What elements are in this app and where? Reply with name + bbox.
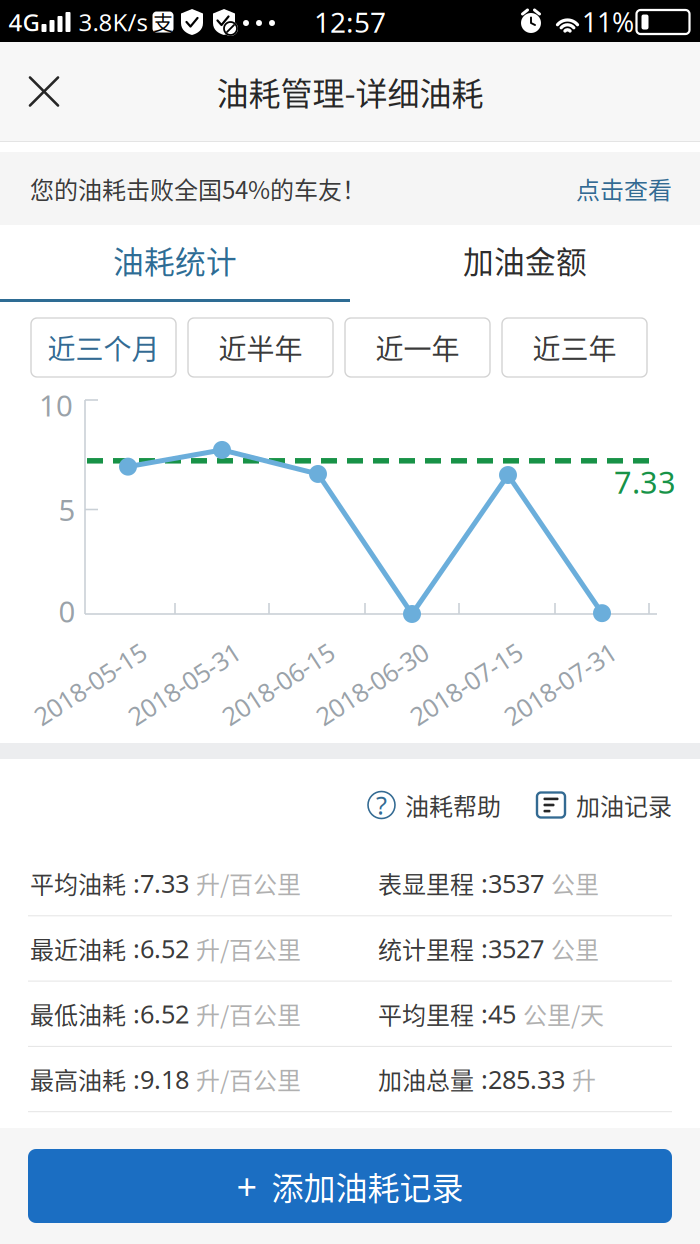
staticText: 10 [39, 385, 73, 424]
staticText: ? [376, 788, 387, 822]
staticText: 公里/天 [523, 996, 604, 1031]
staticText: 7.33 [614, 461, 676, 502]
staticText: 添加油耗记录 [271, 1163, 463, 1209]
staticText: 您的油耗击败全国54%的车友！ [30, 171, 366, 206]
staticText: 近半年 [218, 327, 302, 368]
staticText: 2018-06-15 [214, 667, 342, 701]
staticText: :6.52 [126, 932, 196, 965]
staticText: 升/百公里 [196, 866, 301, 901]
staticText: 公里 [551, 866, 599, 901]
staticText: 平均里程 [378, 996, 474, 1031]
staticText: 升/百公里 [196, 1062, 301, 1096]
staticText: 最近油耗 [30, 931, 126, 966]
staticText: :3527 [474, 932, 551, 965]
staticText: 平均油耗 [30, 866, 126, 901]
staticText: 最低油耗 [30, 996, 126, 1031]
staticText: :9.18 [126, 1062, 196, 1096]
staticText: 统计里程 [378, 931, 474, 966]
button[interactable]: 近三个月 [31, 318, 176, 377]
staticText: 12:57 [314, 3, 386, 41]
staticText: 升/百公里 [196, 996, 301, 1031]
staticText: 2018-05-31 [120, 667, 248, 701]
staticText: 升 [572, 1062, 596, 1096]
staticText: 支 [153, 7, 173, 36]
button[interactable]: 油耗统计 [0, 225, 350, 302]
staticText: 近三个月 [47, 327, 159, 368]
staticText: 4G [8, 6, 39, 38]
staticText: 最高油耗 [30, 1062, 126, 1096]
staticText: 点击查看 [576, 171, 672, 206]
button[interactable]: Close [0, 52, 75, 130]
button[interactable]: ? [368, 788, 501, 822]
button[interactable]: 近半年 [188, 318, 333, 377]
button[interactable]: 点击查看 [576, 171, 672, 206]
staticText: 表显里程 [378, 866, 474, 901]
staticText: 加油记录 [576, 788, 672, 822]
staticText: 2018-05-15 [26, 667, 154, 701]
button[interactable]: 加油金额 [350, 225, 700, 302]
staticText: :7.33 [126, 866, 196, 900]
staticText: :6.52 [126, 997, 196, 1030]
staticText: :3537 [474, 866, 551, 900]
staticText: 加油总量 [378, 1062, 474, 1096]
staticText: :285.33 [474, 1062, 572, 1096]
staticText: 2018-07-15 [402, 667, 530, 701]
staticText: 2018-07-31 [496, 667, 624, 701]
staticText: 近三年 [532, 327, 616, 368]
button[interactable]: 近一年 [345, 318, 490, 377]
staticText: 5 [58, 490, 75, 529]
staticText: 升/百公里 [196, 931, 301, 966]
button[interactable]: 加油记录 [537, 788, 672, 822]
staticText: :45 [474, 997, 523, 1030]
staticText: 油耗统计 [113, 238, 237, 282]
button[interactable]: + [28, 1149, 672, 1223]
staticText: 0 [58, 591, 75, 630]
staticText: 近一年 [375, 327, 459, 368]
staticText: 油耗管理-详细油耗 [216, 68, 483, 115]
staticText: 加油金额 [463, 238, 587, 282]
staticText: 3.8K/s [78, 6, 147, 38]
staticText: 2018-06-30 [308, 667, 436, 701]
staticText: + [236, 1162, 257, 1210]
staticText: 11% [582, 4, 634, 40]
button[interactable]: 近三年 [502, 318, 647, 377]
staticText: 油耗帮助 [405, 788, 501, 822]
staticText: 公里 [551, 931, 599, 966]
